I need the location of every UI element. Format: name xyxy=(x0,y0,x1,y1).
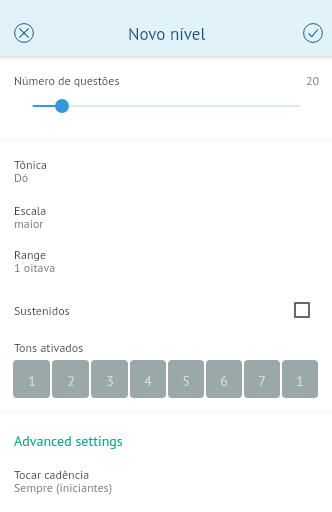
button[interactable]: Tônica xyxy=(0,157,332,189)
staticText: 6 xyxy=(220,372,228,390)
button[interactable]: 7 xyxy=(244,360,280,398)
staticText: 20 xyxy=(306,73,320,89)
staticText: Sempre (iniciantes) xyxy=(14,480,113,496)
button[interactable]: 3 xyxy=(91,360,128,398)
button[interactable]: Advanced settings xyxy=(0,432,332,450)
staticText: maior xyxy=(14,216,44,232)
button[interactable]: Confirm xyxy=(293,13,332,53)
button[interactable]: Close xyxy=(4,13,44,53)
staticText: 2 xyxy=(67,372,75,390)
staticText: Tônica xyxy=(14,157,48,173)
button[interactable]: Number of questions slider xyxy=(0,94,332,118)
button[interactable]: 1 xyxy=(282,360,318,398)
staticText: Sustenidos xyxy=(14,303,70,319)
button[interactable]: 4 xyxy=(130,360,166,398)
button[interactable]: Range xyxy=(0,247,332,279)
staticText: 1 oitava xyxy=(14,260,56,276)
staticText: Número de questões xyxy=(14,73,120,89)
button[interactable]: 6 xyxy=(206,360,242,398)
staticText: 3 xyxy=(106,372,114,390)
staticText: Range xyxy=(14,247,47,263)
button[interactable]: Escala xyxy=(0,203,332,235)
staticText: 1 xyxy=(296,372,304,390)
button[interactable]: Tocar cadência xyxy=(0,467,332,499)
staticText: Escala xyxy=(14,203,47,219)
staticText: Tocar cadência xyxy=(14,467,90,483)
staticText: Tons ativados xyxy=(14,340,84,356)
staticText: Dó xyxy=(14,170,29,186)
staticText: 4 xyxy=(144,372,152,390)
staticText: 7 xyxy=(258,372,266,390)
button[interactable]: Sustenidos checkbox xyxy=(294,302,310,318)
button[interactable]: 1 xyxy=(13,360,50,398)
button[interactable]: 2 xyxy=(52,360,89,398)
staticText: 1 xyxy=(28,372,36,390)
button[interactable]: 5 xyxy=(168,360,204,398)
staticText: 5 xyxy=(182,372,190,390)
staticText: Novo nível xyxy=(128,23,206,45)
